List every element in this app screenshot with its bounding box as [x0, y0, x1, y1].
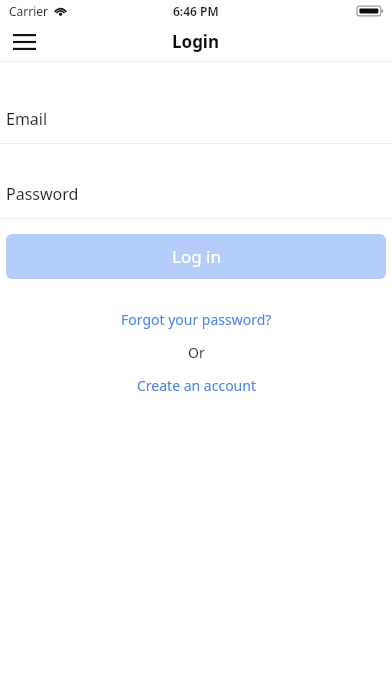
- staticText: Password: [6, 183, 79, 205]
- button[interactable]: Forgot your password?: [0, 308, 392, 330]
- staticText: Email: [6, 108, 48, 130]
- button[interactable]: Open navigation menu: [9, 27, 39, 57]
- staticText: Forgot your password?: [121, 310, 272, 329]
- button[interactable]: Log in: [6, 234, 386, 279]
- staticText: Carrier: [9, 3, 49, 19]
- staticText: Create an account: [137, 376, 256, 395]
- staticText: Or: [188, 343, 205, 362]
- staticText: Login: [172, 30, 220, 53]
- staticText: 6:46 PM: [173, 3, 219, 19]
- staticText: Log in: [172, 245, 221, 268]
- button[interactable]: Email: [0, 105, 392, 133]
- button[interactable]: Password: [0, 180, 392, 208]
- button[interactable]: Create an account: [0, 374, 392, 396]
